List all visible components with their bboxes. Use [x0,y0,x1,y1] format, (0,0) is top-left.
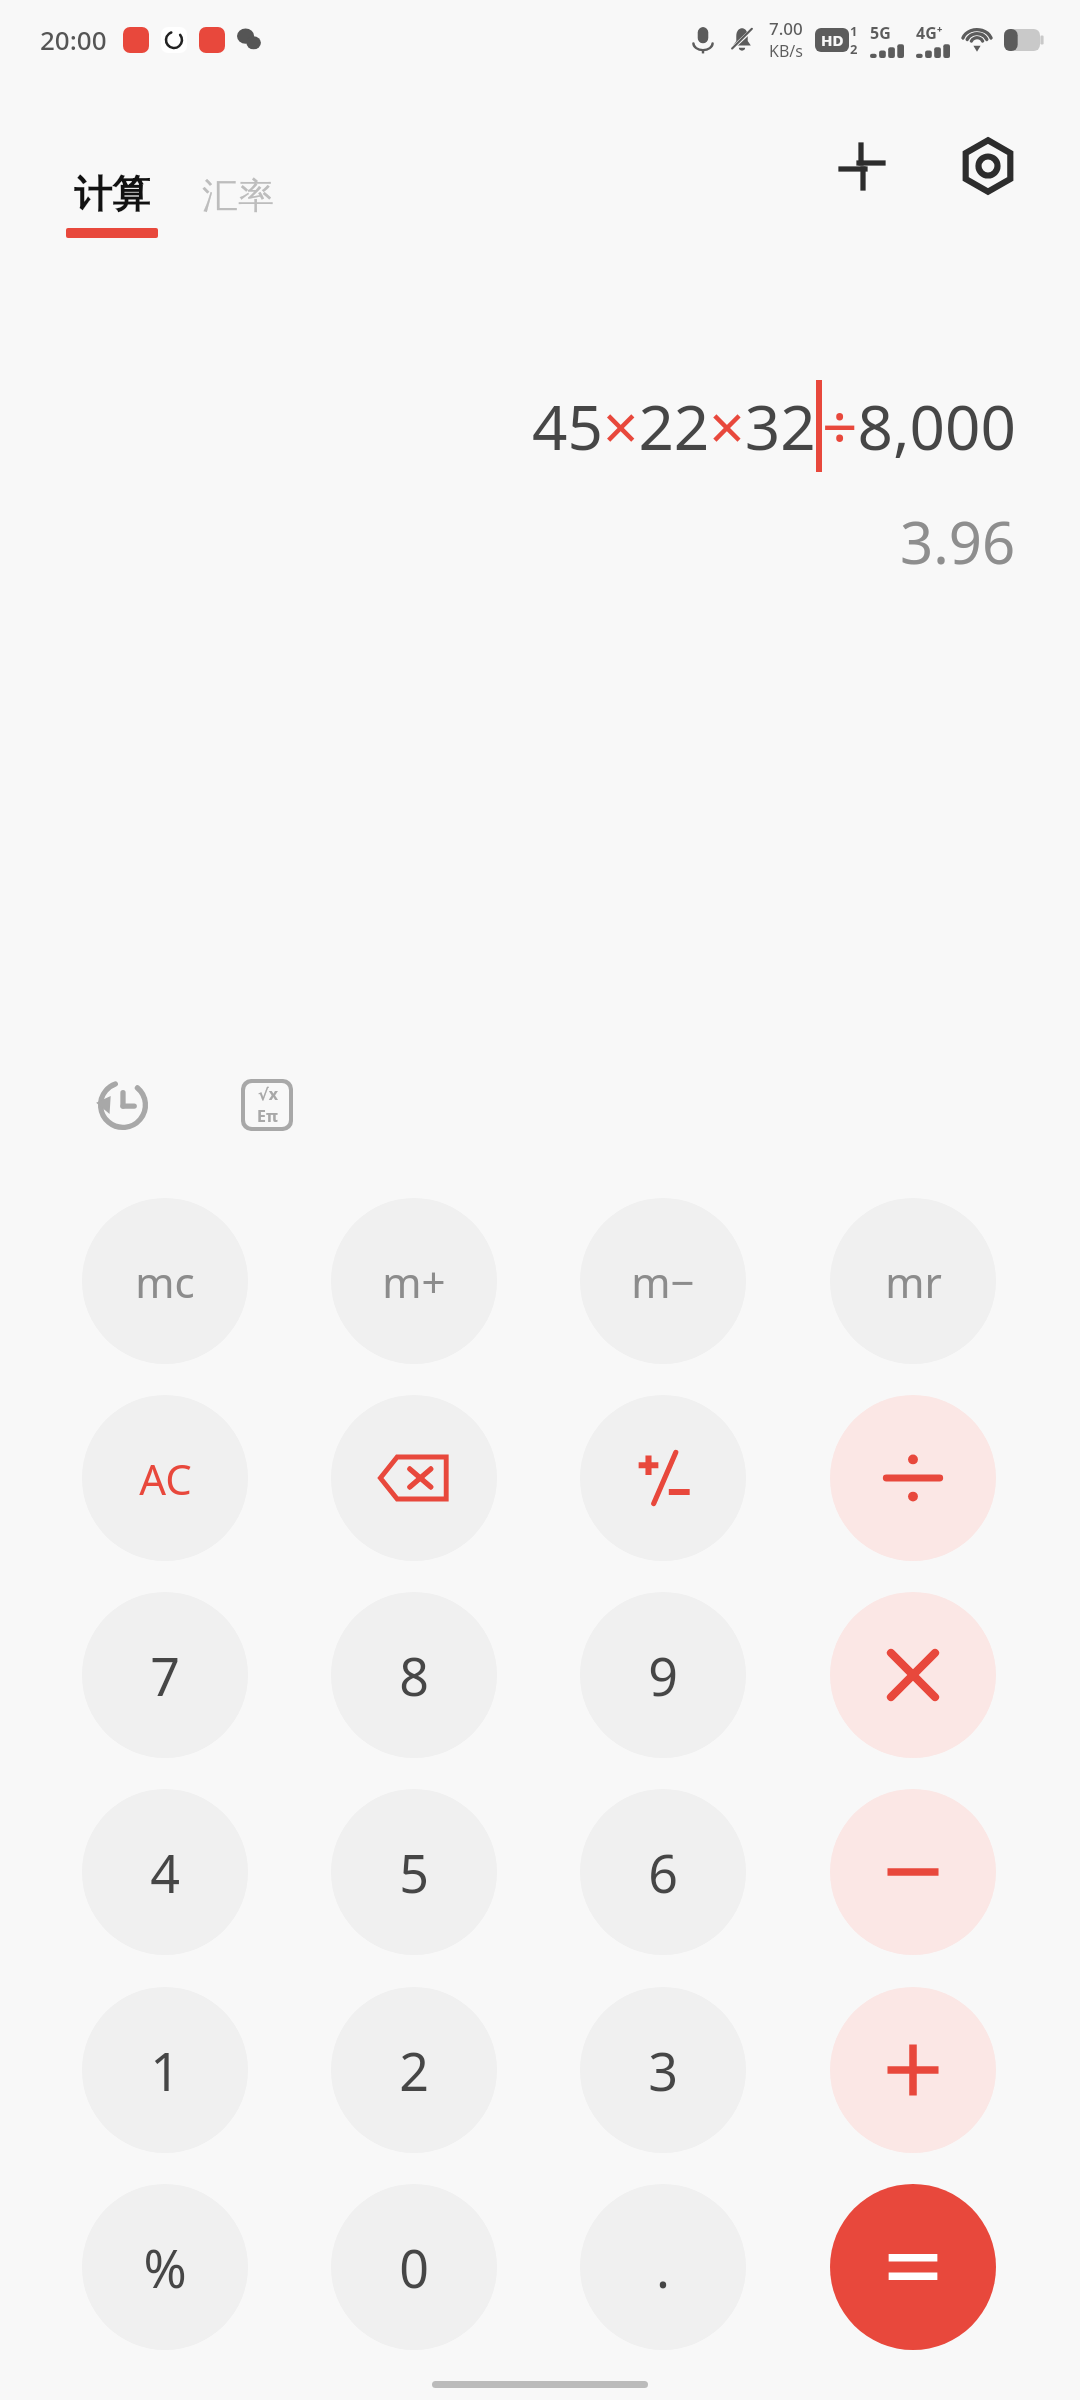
button[interactable]: m+ [331,1198,497,1364]
staticText: 汇率 [202,173,274,218]
button[interactable]: AC [82,1395,248,1561]
button[interactable]: 3 [580,1987,746,2153]
button[interactable]: Minus [830,1789,996,1955]
staticText: 1 [850,22,858,40]
button[interactable]: 0 [331,2184,497,2350]
staticText: 1 [150,2035,180,2106]
button[interactable]: % [82,2184,248,2350]
staticText: 5G [870,22,891,44]
staticText: . [656,2232,670,2303]
button[interactable]: . [580,2184,746,2350]
staticText: 2 [850,40,858,58]
button[interactable]: 2 [331,1987,497,2153]
staticText: 5 [399,1837,429,1908]
staticText: 45×22×32 [532,384,816,468]
staticText: m− [631,1253,695,1310]
staticText: mr [885,1253,942,1310]
button[interactable]: Plus [830,1987,996,2153]
button[interactable]: Plus minus [580,1395,746,1561]
button[interactable]: History [80,1062,166,1148]
button[interactable]: 汇率 [202,173,274,238]
staticText: 2 [399,2035,429,2106]
staticText: AC [139,1450,192,1507]
button[interactable]: 6 [580,1789,746,1955]
button[interactable]: Settings [948,126,1028,206]
button[interactable]: Collapse [824,128,900,204]
staticText: HD [821,30,844,50]
staticText: Eπ [257,1105,278,1127]
button[interactable]: Equals [830,2184,996,2350]
staticText: 4G⁺ [916,22,943,44]
button[interactable]: Scientific [224,1062,310,1148]
staticText: 计算 [74,170,150,218]
button[interactable]: mr [830,1198,996,1364]
button[interactable]: 7 [82,1592,248,1758]
staticText: 7 [150,1640,180,1711]
staticText: 6 [648,1837,678,1908]
button[interactable]: 计算 [66,170,158,238]
button[interactable]: 4 [82,1789,248,1955]
button[interactable]: Divide [830,1395,996,1561]
button[interactable]: m− [580,1198,746,1364]
staticText: KB/s [769,40,803,62]
staticText: 7.00 [769,17,803,40]
staticText: 8 [399,1640,429,1711]
button[interactable]: Backspace [331,1395,497,1561]
staticText: 20:00 [40,22,107,57]
staticText: m+ [382,1253,446,1310]
staticText: 4 [150,1837,180,1908]
staticText: 3 [648,2035,678,2106]
button[interactable]: 1 [82,1987,248,2153]
staticText: % [143,2232,187,2303]
staticText: mc [135,1253,195,1310]
button[interactable]: mc [82,1198,248,1364]
button[interactable]: 8 [331,1592,497,1758]
staticText: 9 [648,1640,678,1711]
staticText: ÷8,000 [822,384,1016,468]
button[interactable]: 9 [580,1592,746,1758]
staticText: √x [258,1083,278,1105]
staticText: 3.96 [900,502,1016,581]
staticText: 0 [399,2232,429,2303]
button[interactable]: Multiply [830,1592,996,1758]
button[interactable]: 5 [331,1789,497,1955]
